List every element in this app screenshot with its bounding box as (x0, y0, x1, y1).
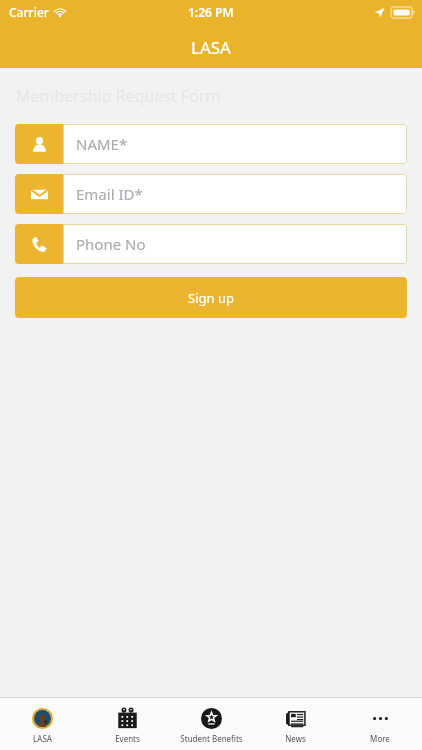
other: Phone number (15, 224, 63, 264)
other: Name (15, 124, 63, 164)
button[interactable]: Name (15, 124, 407, 164)
other: Email ID (15, 174, 63, 214)
staticText: NAME* (76, 134, 128, 154)
staticText: News (285, 733, 306, 744)
staticText: 1:26 PM (188, 4, 234, 20)
staticText: Membership Request Form (16, 85, 221, 107)
button[interactable]: Student Benefits (169, 705, 253, 744)
staticText: Carrier (9, 4, 49, 20)
button[interactable]: LASA (0, 705, 84, 744)
button[interactable]: Email ID (15, 174, 407, 214)
staticText: Events (115, 733, 140, 744)
staticText: LASA (33, 733, 52, 744)
staticText: Email ID* (76, 184, 143, 204)
button[interactable]: News (253, 705, 337, 744)
staticText: Sign up (188, 289, 234, 307)
button[interactable]: Sign up (15, 277, 407, 318)
staticText: Student Benefits (180, 733, 243, 744)
button[interactable]: Phone number (15, 224, 407, 264)
button[interactable]: More (338, 705, 422, 744)
staticText: LASA (191, 36, 231, 59)
staticText: More (370, 733, 390, 744)
button[interactable]: Events (85, 705, 169, 744)
staticText: Phone No (76, 234, 146, 254)
